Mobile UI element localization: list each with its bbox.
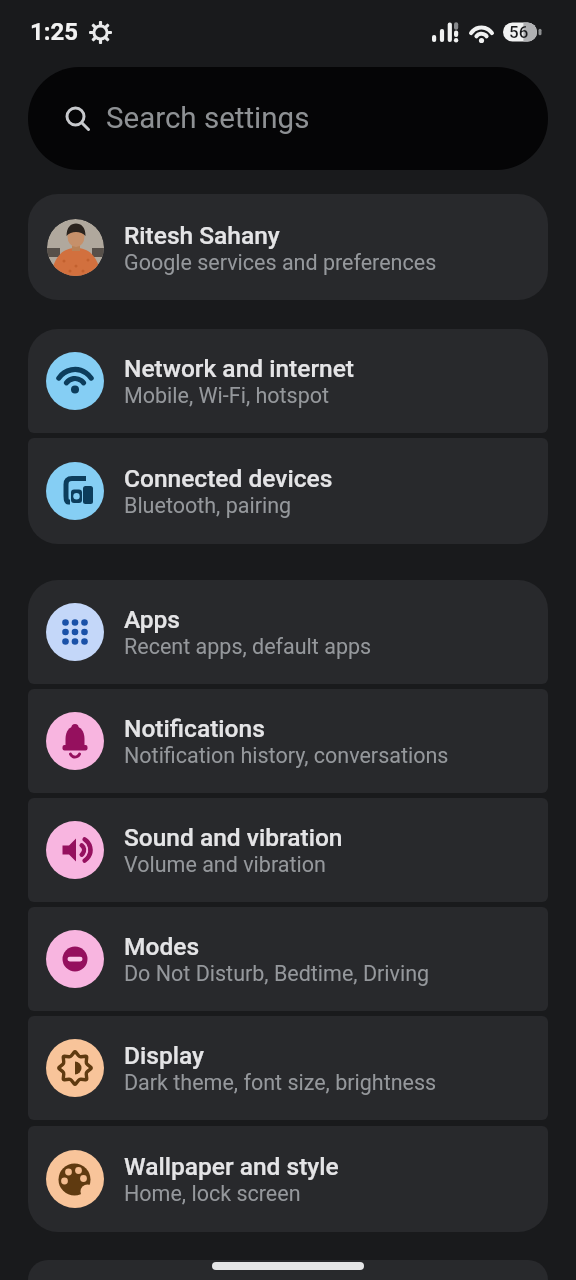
button[interactable]: Apps (28, 580, 548, 684)
staticText: Bluetooth, pairing (124, 493, 292, 518)
staticText: Google services and preferences (124, 250, 437, 275)
button[interactable]: Wallpaper and style (28, 1126, 548, 1232)
staticText: Ritesh Sahany (124, 221, 280, 250)
staticText: 1:25 (30, 18, 79, 46)
staticText: Recent apps, default apps (124, 634, 372, 659)
staticText: Connected devices (124, 464, 333, 493)
staticText: 56 (509, 22, 529, 42)
button[interactable]: Modes (28, 907, 548, 1011)
button[interactable]: Search settings (28, 67, 548, 170)
staticText: Dark theme, font size, brightness (124, 1070, 437, 1095)
button[interactable]: Ritesh Sahany (28, 194, 548, 300)
staticText: Modes (124, 932, 200, 961)
button[interactable]: Display (28, 1016, 548, 1120)
staticText: Network and internet (124, 354, 354, 383)
staticText: Sound and vibration (124, 823, 343, 852)
staticText: Home, lock screen (124, 1181, 301, 1206)
button[interactable]: Connected devices (28, 438, 548, 544)
button[interactable] (28, 1260, 548, 1280)
staticText: Notification history, conversations (124, 743, 449, 768)
staticText: Do Not Disturb, Bedtime, Driving (124, 961, 430, 986)
staticText: Apps (124, 605, 180, 634)
staticText: Search settings (106, 101, 310, 136)
staticText: Display (124, 1041, 205, 1070)
staticText: Volume and vibration (124, 852, 326, 877)
staticText: Mobile, Wi-Fi, hotspot (124, 383, 330, 408)
staticText: Wallpaper and style (124, 1152, 339, 1181)
staticText: Notifications (124, 714, 265, 743)
button[interactable]: Notifications (28, 689, 548, 793)
button[interactable]: Network and internet (28, 329, 548, 433)
button[interactable]: Sound and vibration (28, 798, 548, 902)
